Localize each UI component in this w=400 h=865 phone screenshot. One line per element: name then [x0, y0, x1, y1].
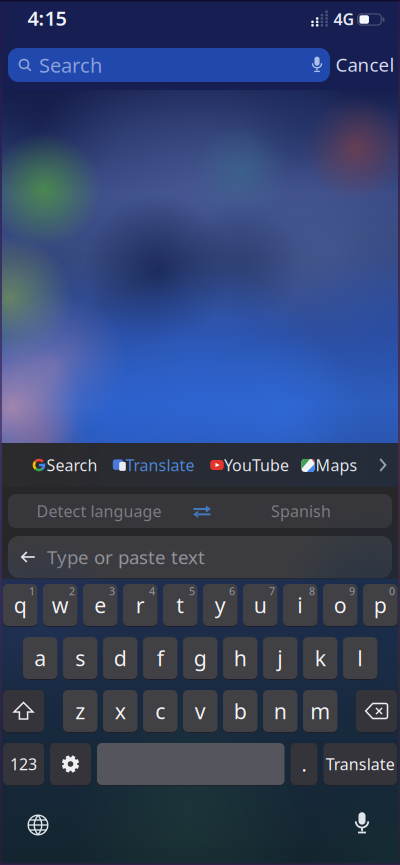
staticText: v: [195, 697, 206, 725]
button[interactable]: Spanish: [211, 494, 391, 528]
staticText: q: [14, 591, 27, 619]
staticText: 1: [29, 584, 35, 598]
staticText: u: [254, 591, 267, 619]
button[interactable]: a: [23, 636, 57, 679]
button[interactable]: Translate: [112, 450, 189, 480]
button[interactable]: n: [263, 689, 297, 732]
staticText: x: [115, 697, 126, 725]
button[interactable]: Detect language: [9, 494, 189, 528]
staticText: o: [334, 591, 347, 619]
button[interactable]: Dictate: [311, 56, 323, 73]
staticText: n: [274, 697, 287, 725]
staticText: 4: [149, 584, 155, 598]
button[interactable]: YouTube: [210, 450, 283, 480]
staticText: 4:15: [27, 5, 66, 31]
staticText: 123: [10, 753, 37, 775]
button[interactable]: j: [263, 636, 297, 679]
button[interactable]: b: [223, 689, 257, 732]
staticText: y: [215, 591, 226, 619]
staticText: t: [176, 591, 184, 619]
staticText: j: [277, 644, 283, 672]
staticText: m: [310, 697, 330, 725]
staticText: 3: [109, 584, 115, 598]
button[interactable]: d: [103, 636, 137, 679]
button[interactable]: v: [183, 689, 217, 732]
button[interactable]: e: [83, 583, 117, 626]
staticText: s: [75, 644, 85, 672]
staticText: 6: [229, 584, 235, 598]
button[interactable]: w: [43, 583, 77, 626]
button[interactable]: t: [163, 583, 197, 626]
staticText: a: [34, 644, 46, 672]
button[interactable]: Translate: [323, 742, 397, 785]
button[interactable]: x: [103, 689, 137, 732]
button[interactable]: z: [63, 689, 97, 732]
staticText: e: [94, 591, 106, 619]
staticText: Cancel: [335, 52, 394, 77]
button[interactable]: o: [323, 583, 357, 626]
button[interactable]: Shift: [3, 689, 44, 732]
staticText: Search: [46, 454, 97, 476]
staticText: f: [157, 644, 164, 672]
button[interactable]: i: [283, 583, 317, 626]
button[interactable]: Cancel: [335, 52, 394, 77]
staticText: Translate: [125, 454, 194, 476]
staticText: 0: [389, 584, 395, 598]
button[interactable]: c: [143, 689, 177, 732]
button[interactable]: .: [290, 742, 317, 785]
button[interactable]: 123: [3, 742, 44, 785]
staticText: i: [297, 591, 303, 619]
button[interactable]: Dictate: [354, 811, 370, 835]
staticText: 5: [189, 584, 195, 598]
button[interactable]: Delete: [356, 689, 397, 732]
staticText: b: [234, 697, 247, 725]
button[interactable]: Next keyboard: [27, 814, 49, 836]
button[interactable]: u: [243, 583, 277, 626]
staticText: Translate: [326, 753, 395, 775]
staticText: l: [357, 644, 363, 672]
staticText: h: [234, 644, 247, 672]
button[interactable]: Swap languages: [192, 504, 212, 519]
staticText: Spanish: [271, 500, 331, 522]
staticText: w: [52, 591, 69, 619]
staticText: c: [155, 697, 165, 725]
staticText: Type or paste text: [47, 545, 205, 569]
button[interactable]: y: [203, 583, 237, 626]
button[interactable]: k: [303, 636, 337, 679]
staticText: Search: [39, 52, 102, 78]
button[interactable]: p: [363, 583, 397, 626]
staticText: 4G: [333, 8, 354, 30]
button[interactable]: Search: [8, 48, 330, 82]
button[interactable]: [97, 742, 284, 785]
button[interactable]: r: [123, 583, 157, 626]
button[interactable]: More: [379, 458, 387, 472]
button[interactable]: s: [63, 636, 97, 679]
staticText: .: [301, 751, 306, 777]
staticText: r: [136, 591, 145, 619]
button[interactable]: g: [183, 636, 217, 679]
button[interactable]: l: [343, 636, 377, 679]
staticText: 8: [309, 584, 315, 598]
staticText: 2: [69, 584, 75, 598]
staticText: 7: [269, 584, 275, 598]
button[interactable]: Type or paste text: [8, 536, 392, 578]
button[interactable]: m: [303, 689, 337, 732]
staticText: k: [315, 644, 326, 672]
staticText: g: [194, 644, 207, 672]
staticText: d: [114, 644, 127, 672]
staticText: YouTube: [224, 454, 289, 476]
staticText: p: [374, 591, 387, 619]
staticText: z: [75, 697, 85, 725]
button[interactable]: f: [143, 636, 177, 679]
staticText: 9: [349, 584, 355, 598]
staticText: Detect language: [36, 500, 161, 522]
staticText: Maps: [315, 454, 357, 476]
button[interactable]: q: [3, 583, 37, 626]
button[interactable]: Maps: [301, 450, 352, 480]
button[interactable]: Search: [31, 450, 93, 480]
button[interactable]: h: [223, 636, 257, 679]
button[interactable]: Settings: [50, 742, 91, 785]
